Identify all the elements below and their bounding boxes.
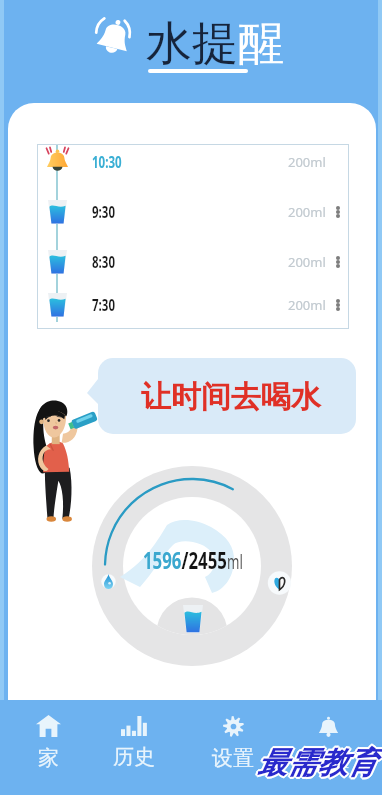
- staticText: 最需教育: [258, 743, 378, 781]
- staticText: 让时间去喝水: [141, 378, 321, 416]
- staticText: 1596: [143, 543, 181, 576]
- button[interactable]: 7:30: [37, 287, 347, 322]
- staticText: 8:30: [92, 251, 115, 273]
- button[interactable]: 8:30: [37, 237, 347, 287]
- button[interactable]: Home: [5, 700, 91, 795]
- staticText: 9:30: [92, 201, 115, 223]
- staticText: 200ml: [288, 296, 326, 314]
- staticText: 7:30: [92, 294, 115, 316]
- staticText: 最需教育: [257, 742, 377, 780]
- staticText: ml: [227, 549, 243, 575]
- staticText: 最需教育: [258, 745, 378, 783]
- button[interactable]: Settings: [190, 700, 276, 795]
- staticText: /2455: [181, 543, 227, 576]
- other: Home: [36, 715, 61, 737]
- button[interactable]: 9:30: [37, 187, 347, 237]
- other: Reminders: [318, 715, 339, 738]
- staticText: 提醒: [307, 746, 349, 772]
- staticText: 历史: [113, 744, 155, 770]
- other: Reminder: [92, 15, 134, 59]
- other: Settings: [223, 716, 244, 737]
- staticText: 最需教育: [257, 744, 377, 782]
- other: Health: [272, 576, 287, 590]
- staticText: 最需教育: [255, 744, 375, 782]
- staticText: 醒: [238, 15, 284, 73]
- staticText: 10:30: [92, 151, 122, 173]
- staticText: 最需教育: [256, 743, 376, 781]
- button[interactable]: Reminders: [285, 700, 371, 795]
- staticText: 200ml: [288, 203, 326, 221]
- staticText: 水提: [146, 15, 238, 73]
- other: Water intake: [104, 574, 113, 589]
- button[interactable]: More options: [336, 237, 340, 287]
- button[interactable]: History: [91, 700, 177, 795]
- staticText: 最需教育: [259, 744, 379, 782]
- staticText: 200ml: [288, 153, 326, 171]
- staticText: 最需教育: [258, 744, 378, 782]
- staticText: 家: [38, 745, 59, 771]
- staticText: 最需教育: [257, 745, 377, 783]
- staticText: 200ml: [288, 253, 326, 271]
- staticText: 最需教育: [257, 743, 377, 781]
- staticText: 最需教育: [256, 744, 376, 782]
- button[interactable]: More options: [336, 287, 340, 322]
- other: History: [121, 716, 147, 736]
- staticText: 最需教育: [257, 746, 377, 784]
- staticText: 最需教育: [256, 745, 376, 783]
- staticText: 设置: [212, 745, 254, 771]
- button[interactable]: More options: [336, 187, 340, 237]
- button[interactable]: 10:30: [37, 144, 347, 187]
